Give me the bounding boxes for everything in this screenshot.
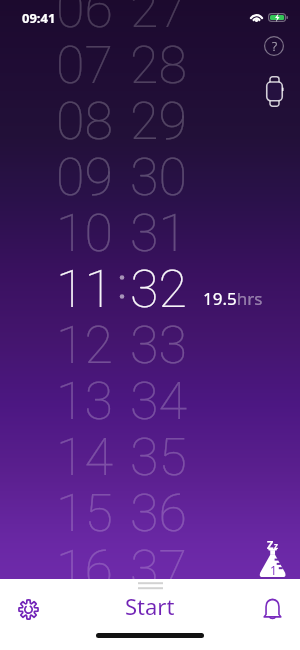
staticText: 29 [130, 91, 187, 151]
staticText: 36 [130, 483, 187, 543]
button[interactable]: Alarms [250, 588, 295, 628]
staticText: 32 [130, 259, 187, 319]
staticText: 09:41 [22, 9, 56, 27]
staticText: 13 [56, 371, 113, 431]
staticText: 15 [56, 483, 113, 543]
staticText: 1 [270, 562, 277, 578]
button[interactable]: Start [100, 586, 200, 626]
staticText: 16 [56, 539, 113, 599]
staticText: 12 [56, 315, 113, 375]
staticText: Z [267, 537, 274, 552]
staticText: 11 [56, 259, 113, 319]
button[interactable]: Settings [6, 589, 51, 629]
staticText: ? [272, 38, 278, 54]
staticText: 34 [130, 371, 187, 431]
staticText: 06 [56, 0, 113, 39]
button[interactable]: Connect watch [260, 72, 288, 110]
staticText: z [274, 540, 278, 551]
button[interactable]: Help [261, 33, 287, 59]
staticText: 35 [130, 427, 187, 487]
staticText: 09 [56, 147, 113, 207]
staticText: 30 [130, 147, 187, 207]
staticText: 31 [130, 203, 187, 263]
staticText: 14 [56, 427, 113, 487]
staticText: 10 [56, 203, 113, 263]
button[interactable]: Sleep sessions [256, 536, 288, 577]
staticText: Start [125, 591, 175, 621]
staticText: 33 [130, 315, 187, 375]
staticText: 27 [130, 0, 187, 39]
staticText: 37 [130, 539, 187, 599]
staticText: 19.5hrs [203, 287, 263, 310]
staticText: 08 [56, 91, 113, 151]
staticText: 07 [56, 35, 113, 95]
staticText: 28 [130, 35, 187, 95]
